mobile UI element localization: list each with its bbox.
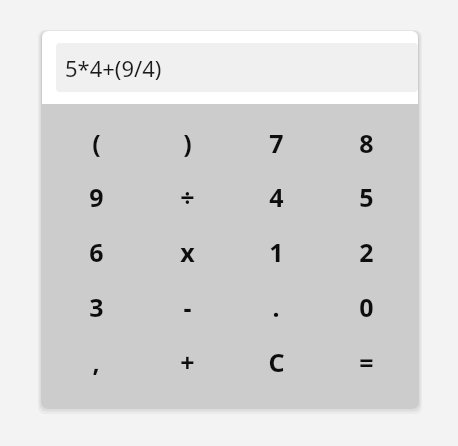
button[interactable]: ( xyxy=(52,116,140,170)
staticText: 0 xyxy=(359,290,374,324)
button[interactable]: 5 xyxy=(322,170,410,224)
button[interactable]: , xyxy=(52,335,140,389)
button[interactable]: . xyxy=(232,280,320,334)
staticText: 3 xyxy=(89,290,104,324)
button[interactable]: - xyxy=(143,280,231,334)
staticText: 8 xyxy=(359,126,374,160)
staticText: - xyxy=(183,290,192,324)
staticText: . xyxy=(272,290,280,324)
staticText: 2 xyxy=(359,235,374,269)
staticText: 5*4+(9/4) xyxy=(65,53,162,83)
button[interactable]: + xyxy=(143,335,231,389)
button[interactable]: 8 xyxy=(322,116,410,170)
button[interactable]: 1 xyxy=(232,225,320,279)
staticText: 4 xyxy=(269,180,284,214)
button[interactable]: ÷ xyxy=(143,170,231,224)
button[interactable]: 7 xyxy=(232,116,320,170)
staticText: 7 xyxy=(269,126,284,160)
staticText: ) xyxy=(183,126,192,160)
button[interactable]: = xyxy=(322,335,410,389)
button[interactable]: 6 xyxy=(52,225,140,279)
button[interactable]: 9 xyxy=(52,170,140,224)
button[interactable]: 5*4+(9/4) xyxy=(56,43,418,92)
button[interactable]: C xyxy=(232,335,320,389)
button[interactable]: 2 xyxy=(322,225,410,279)
staticText: 6 xyxy=(89,235,104,269)
staticText: , xyxy=(92,345,100,379)
button[interactable]: ) xyxy=(143,116,231,170)
button[interactable]: x xyxy=(143,225,231,279)
staticText: + xyxy=(180,345,195,379)
staticText: ( xyxy=(92,126,101,160)
button[interactable]: 4 xyxy=(232,170,320,224)
button[interactable]: 3 xyxy=(52,280,140,334)
staticText: 1 xyxy=(269,235,284,269)
staticText: = xyxy=(359,345,374,379)
staticText: 9 xyxy=(89,180,104,214)
staticText: C xyxy=(268,345,285,379)
staticText: 5 xyxy=(359,180,374,214)
button[interactable]: 0 xyxy=(322,280,410,334)
staticText: ÷ xyxy=(180,180,195,214)
staticText: x xyxy=(180,235,195,269)
